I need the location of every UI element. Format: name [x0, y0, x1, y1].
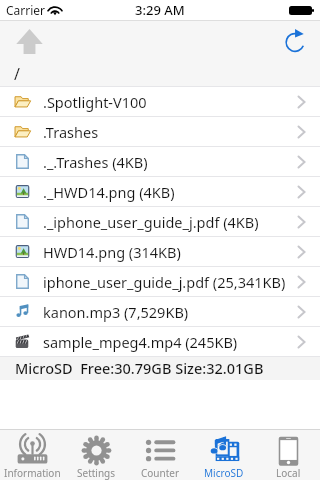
- button[interactable]: Counter: [128, 430, 192, 480]
- staticText: HWD14.png (314KB): [43, 242, 293, 262]
- staticText: kanon.mp3 (7,529KB): [43, 302, 293, 322]
- staticText: Information: [4, 466, 61, 480]
- button[interactable]: ._HWD14.png (4KB): [0, 176, 320, 206]
- button[interactable]: Information: [0, 430, 64, 480]
- staticText: sample_mpeg4.mp4 (245KB): [43, 332, 293, 352]
- staticText: MicroSD Free:30.79GB Size:32.01GB: [15, 358, 264, 378]
- staticText: 3:29 AM: [135, 1, 185, 19]
- staticText: Settings: [77, 466, 116, 480]
- button[interactable]: ._.Trashes (4KB): [0, 146, 320, 176]
- button[interactable]: Settings: [64, 430, 128, 480]
- staticText: .Spotlight-V100: [43, 92, 293, 112]
- button[interactable]: .Trashes: [0, 116, 320, 146]
- staticText: Counter: [141, 466, 180, 480]
- button[interactable]: .Spotlight-V100: [0, 86, 320, 116]
- button[interactable]: HWD14.png (314KB): [0, 236, 320, 266]
- staticText: Local: [276, 466, 301, 480]
- staticText: ._iphone_user_guide_j.pdf (4KB): [43, 212, 293, 232]
- button[interactable]: kanon.mp3 (7,529KB): [0, 296, 320, 326]
- button[interactable]: ._iphone_user_guide_j.pdf (4KB): [0, 206, 320, 236]
- staticText: ._HWD14.png (4KB): [43, 182, 293, 202]
- staticText: /: [14, 63, 20, 85]
- button[interactable]: Refresh: [279, 24, 313, 58]
- button[interactable]: sample_mpeg4.mp4 (245KB): [0, 326, 320, 356]
- staticText: Carrier: [6, 2, 46, 18]
- staticText: .Trashes: [43, 122, 293, 142]
- staticText: MicroSD: [204, 466, 244, 480]
- staticText: iphone_user_guide_j.pdf (25,341KB): [43, 272, 293, 292]
- button[interactable]: Up: [11, 23, 47, 59]
- staticText: ._.Trashes (4KB): [43, 152, 293, 172]
- button[interactable]: MicroSD: [192, 430, 256, 480]
- button[interactable]: iphone_user_guide_j.pdf (25,341KB): [0, 266, 320, 296]
- button[interactable]: Local: [256, 430, 320, 480]
